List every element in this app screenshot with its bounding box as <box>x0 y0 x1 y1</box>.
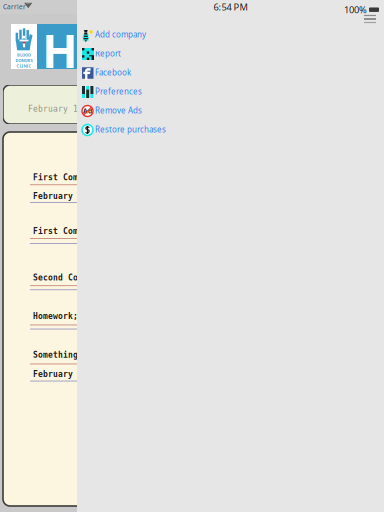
button[interactable]: Add company <box>77 25 384 44</box>
staticText: 100% <box>344 3 367 16</box>
staticText: 6:54 PM <box>213 1 247 13</box>
staticText: Carrier <box>3 2 26 11</box>
staticText: February 13, 2015 <box>33 192 118 201</box>
staticText: Help <box>42 19 99 205</box>
staticText: Something else here <box>33 350 128 360</box>
staticText: Remove Ads <box>95 105 142 116</box>
button[interactable]: Ad <box>77 101 384 120</box>
button[interactable]: Menu <box>362 13 378 25</box>
button[interactable]: Report <box>77 44 384 63</box>
staticText: February 13, 2015 <box>33 370 118 379</box>
button[interactable]: Restore purchases <box>77 120 384 139</box>
staticText: CLINIC <box>16 63 31 69</box>
staticText: Report <box>95 48 121 59</box>
button[interactable]: Preferences <box>77 82 384 101</box>
staticText: First Company Name <box>33 227 123 236</box>
staticText: First Company Name <box>33 173 123 182</box>
staticText: Add company <box>95 29 146 40</box>
staticText: Preferences <box>95 86 142 97</box>
button[interactable]: Facebook <box>77 63 384 82</box>
staticText: DONORS <box>15 58 32 63</box>
staticText: Facebook <box>95 67 131 78</box>
staticText: Second Company LLC <box>33 273 123 282</box>
staticText: February 13, 2015 - Friday <box>28 104 168 114</box>
staticText: Restore purchases <box>95 124 166 135</box>
staticText: Ad <box>83 107 92 115</box>
staticText: BLOOD <box>17 52 31 58</box>
staticText: Homework; read book <box>33 312 128 321</box>
